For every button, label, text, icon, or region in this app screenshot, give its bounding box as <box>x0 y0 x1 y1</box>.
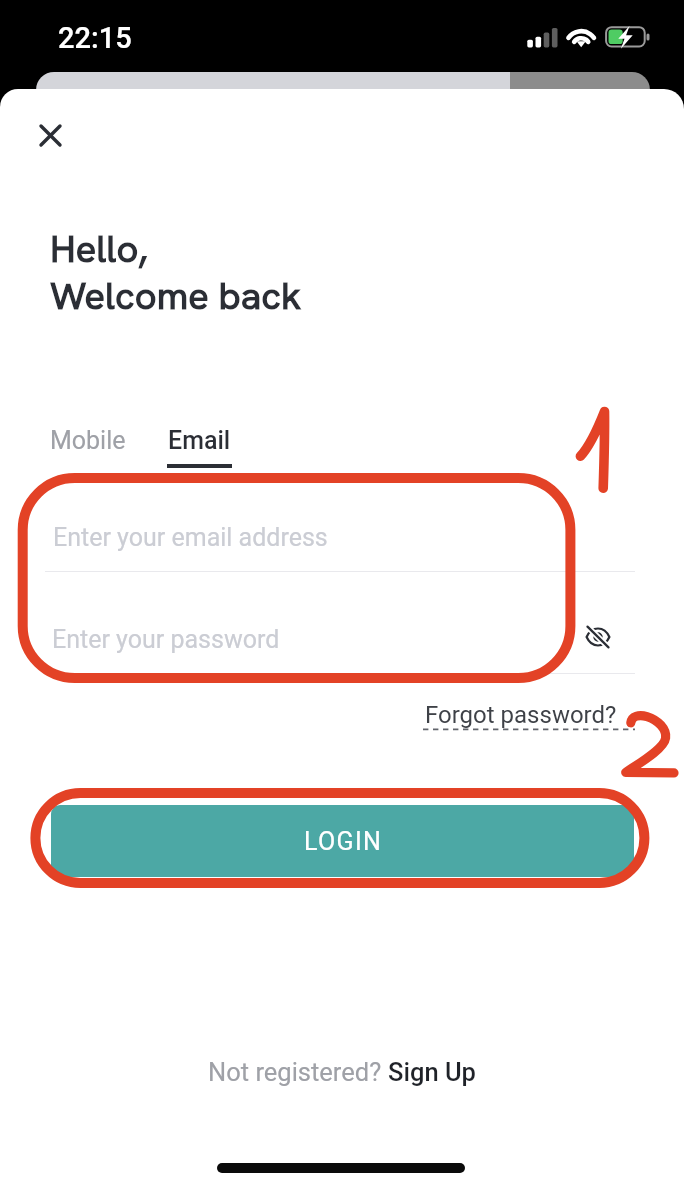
button[interactable]: LOGIN <box>51 805 634 877</box>
staticText: Forgot password? <box>425 701 617 729</box>
staticText: 22:15 <box>58 21 132 55</box>
staticText: Not registered? <box>208 1057 388 1087</box>
button[interactable]: Email <box>155 420 244 461</box>
button[interactable]: Forgot password? <box>418 701 631 740</box>
button[interactable]: Close <box>26 111 74 159</box>
staticText: Sign Up <box>388 1057 476 1087</box>
staticText: Mobile <box>50 426 126 455</box>
staticText: Enter your email address <box>53 523 328 552</box>
button[interactable]: Sign Up <box>388 1057 476 1087</box>
staticText: LOGIN <box>304 827 383 856</box>
staticText: Email <box>168 426 231 455</box>
staticText: Hello, Welcome back <box>50 224 302 320</box>
button[interactable]: Enter your password <box>45 606 575 673</box>
staticText: Enter your password <box>52 625 280 654</box>
button[interactable]: Show password <box>574 613 622 661</box>
button[interactable]: Mobile <box>39 420 137 461</box>
button[interactable]: Enter your email address <box>45 504 635 571</box>
